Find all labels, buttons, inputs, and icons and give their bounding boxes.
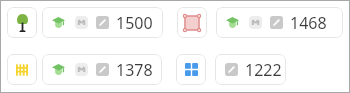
button[interactable]: 1378 — [42, 54, 162, 85]
button[interactable]: Grid — [176, 54, 206, 85]
staticText: 1468 — [290, 12, 327, 34]
staticText: 1500 — [116, 12, 153, 34]
button[interactable]: Shape — [177, 7, 207, 38]
button[interactable]: Fence — [7, 54, 37, 85]
button[interactable]: Tree — [7, 7, 37, 38]
button[interactable]: 1468 — [216, 7, 343, 38]
button[interactable]: 1222 — [215, 54, 286, 85]
staticText: 1222 — [245, 59, 282, 81]
staticText: 1378 — [116, 59, 153, 81]
button[interactable]: 1500 — [42, 7, 163, 38]
